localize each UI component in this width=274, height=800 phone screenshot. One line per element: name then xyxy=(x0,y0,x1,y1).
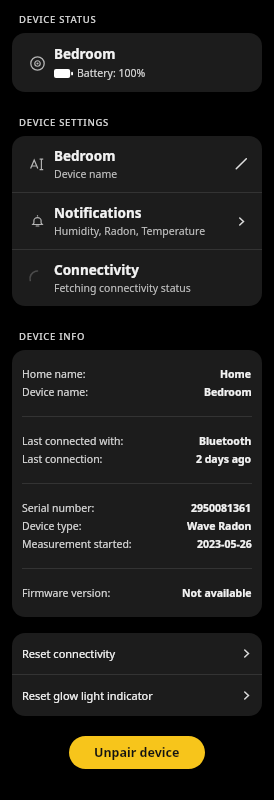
button[interactable]: Reset connectivity xyxy=(12,633,262,674)
button[interactable]: Connectivity xyxy=(12,250,262,306)
staticText: DEVICE SETTINGS xyxy=(19,116,109,129)
other: Edit device name xyxy=(230,153,252,175)
button[interactable]: Notifications xyxy=(12,193,262,249)
staticText: Device type: xyxy=(22,519,82,533)
staticText: Bedroom xyxy=(54,45,116,63)
staticText: Bluetooth xyxy=(199,434,252,448)
staticText: Connectivity xyxy=(54,261,139,279)
staticText: Fetching connectivity status xyxy=(54,281,191,295)
staticText: Not available xyxy=(182,586,252,600)
staticText: Device name xyxy=(54,167,118,181)
staticText: Measurement started: xyxy=(22,537,132,551)
staticText: Serial number: xyxy=(22,501,95,515)
staticText: Home xyxy=(220,367,252,381)
staticText: Reset connectivity xyxy=(22,646,116,661)
button[interactable]: Bedroom xyxy=(12,136,262,192)
staticText: Last connected with: xyxy=(22,434,124,448)
staticText: Notifications xyxy=(54,204,142,222)
staticText: Wave Radon xyxy=(187,519,252,533)
staticText: Battery: 100% xyxy=(77,66,146,80)
staticText: Firmware version: xyxy=(22,586,111,600)
staticText: Bedroom xyxy=(54,147,116,165)
button[interactable]: Reset glow light indicator xyxy=(12,675,262,716)
staticText: DEVICE STATUS xyxy=(19,13,97,26)
other: Reset glow light indicator xyxy=(241,690,252,701)
staticText: Reset glow light indicator xyxy=(22,688,153,703)
button[interactable]: Bedroom xyxy=(12,33,262,92)
staticText: Home name: xyxy=(22,367,86,381)
other: Open notifications xyxy=(230,210,252,232)
staticText: Bedroom xyxy=(204,385,252,399)
staticText: 2023-05-26 xyxy=(197,537,252,551)
button[interactable]: Unpair device xyxy=(69,736,205,769)
staticText: 2950081361 xyxy=(191,501,252,515)
staticText: Last connection: xyxy=(22,452,103,466)
staticText: 2 days ago xyxy=(196,452,252,466)
staticText: Humidity, Radon, Temperature xyxy=(54,224,206,238)
staticText: Unpair device xyxy=(94,744,180,761)
staticText: Device name: xyxy=(22,385,89,399)
other: Reset connectivity xyxy=(241,648,252,659)
staticText: DEVICE INFO xyxy=(19,330,86,343)
